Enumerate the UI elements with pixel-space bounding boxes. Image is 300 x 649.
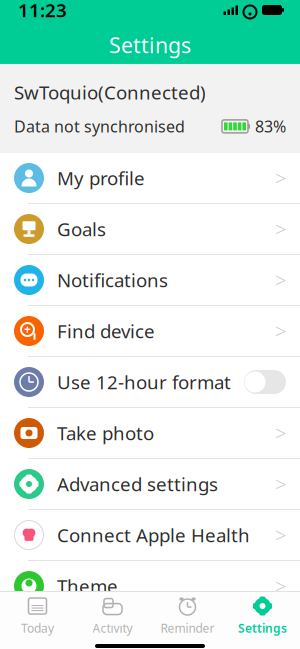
staticText: Today (21, 620, 54, 636)
staticText: Take photo (57, 421, 154, 445)
staticText: > (275, 216, 286, 242)
button[interactable]: My profile (0, 153, 300, 204)
button[interactable]: Reminder (150, 592, 225, 639)
staticText: My profile (57, 166, 145, 190)
button[interactable]: Use 12-hour format (0, 357, 300, 408)
staticText: > (275, 471, 286, 497)
staticText: > (275, 318, 286, 344)
staticText: Theme (57, 574, 118, 598)
staticText: Goals (57, 217, 106, 241)
staticText: + (24, 321, 31, 337)
staticText: Notifications (57, 268, 168, 292)
staticText: SwToquio(Connected) (14, 80, 206, 105)
staticText: Settings (109, 31, 191, 59)
staticText: Settings (238, 620, 287, 636)
staticText: Activity (92, 620, 132, 636)
button[interactable]: Advanced settings (0, 459, 300, 510)
staticText: Advanced settings (57, 472, 218, 496)
staticText: Find device (57, 319, 155, 343)
button[interactable]: Notifications (0, 255, 300, 306)
button[interactable]: Connect Apple Health (0, 510, 300, 561)
staticText: Reminder (160, 620, 214, 636)
staticText: > (275, 165, 286, 191)
staticText: Use 12-hour format (57, 370, 231, 394)
button[interactable]: Take photo (0, 408, 300, 459)
staticText: Data not synchronised (14, 116, 185, 137)
button[interactable]: Theme (0, 561, 300, 612)
button[interactable]: Today (0, 592, 75, 639)
staticText: > (275, 573, 286, 599)
staticText: > (275, 420, 286, 446)
staticText: Connect Apple Health (57, 523, 250, 547)
button[interactable]: + (0, 306, 300, 357)
staticText: 83% (255, 116, 286, 137)
staticText: 11:23 (18, 0, 67, 22)
staticText: > (275, 267, 286, 293)
staticText: > (275, 522, 286, 548)
button[interactable]: Activity (75, 592, 150, 639)
button[interactable]: Goals (0, 204, 300, 255)
button[interactable]: Settings (225, 592, 300, 639)
